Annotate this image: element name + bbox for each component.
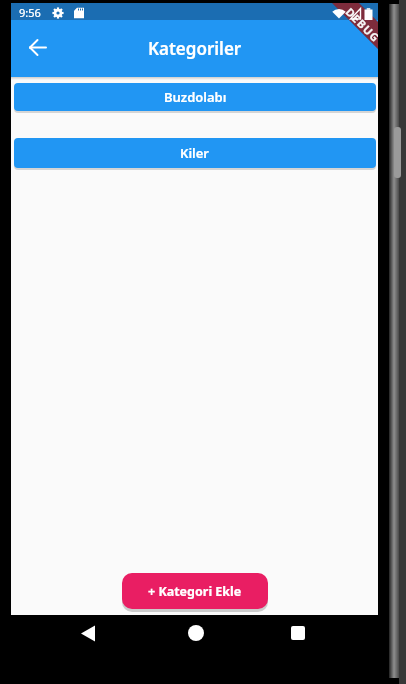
button[interactable] [291,626,305,640]
staticText: Kategoriler [148,37,242,60]
staticText: Buzdolabı [164,88,227,106]
button[interactable]: Kiler [14,138,376,168]
staticText: DEBUG [343,4,378,45]
staticText: 9:56 [19,5,41,20]
staticText: + Kategori Ekle [148,583,242,600]
button[interactable]: + Kategori Ekle [122,573,268,609]
button[interactable] [188,625,204,641]
button[interactable]: Buzdolabı [14,83,376,111]
button[interactable] [29,39,47,56]
button[interactable] [80,625,96,642]
staticText: Kiler [180,144,210,162]
